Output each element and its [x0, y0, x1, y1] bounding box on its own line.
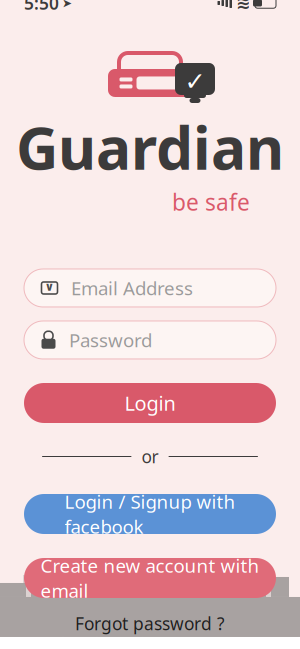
button[interactable]: Create new account with email — [24, 558, 276, 598]
staticText: Login / Signup with facebook — [64, 489, 235, 539]
button[interactable]: Forgot password ? — [63, 606, 237, 641]
button[interactable]: Login / Signup with facebook — [24, 494, 276, 534]
staticText: Login — [124, 390, 175, 416]
staticText: Email Address — [71, 276, 193, 300]
staticText: Create new account with email — [40, 553, 259, 603]
staticText: Guardian — [16, 108, 284, 186]
staticText: ➤ — [62, 0, 72, 10]
button[interactable]: Login — [24, 383, 276, 423]
staticText: be safe — [172, 187, 250, 217]
staticText: ✓ — [184, 67, 205, 96]
staticText: Forgot password ? — [75, 612, 225, 635]
staticText: or — [141, 445, 158, 468]
staticText: ∨ — [44, 280, 54, 293]
staticText: 5:50 — [24, 0, 59, 14]
staticText: Password — [69, 328, 152, 352]
staticText: ≋ — [236, 0, 251, 13]
